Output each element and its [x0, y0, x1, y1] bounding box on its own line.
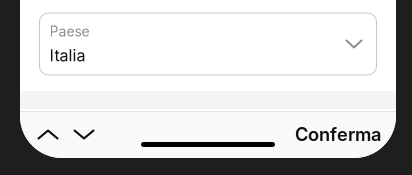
- button[interactable]: Next field: [66, 112, 102, 157]
- staticText: Italia: [49, 46, 85, 65]
- button[interactable]: Paese: [39, 13, 376, 75]
- staticText: Paese: [49, 23, 89, 40]
- button[interactable]: Previous field: [30, 112, 66, 157]
- staticText: Conferma: [295, 123, 381, 145]
- button[interactable]: Conferma: [283, 112, 393, 157]
